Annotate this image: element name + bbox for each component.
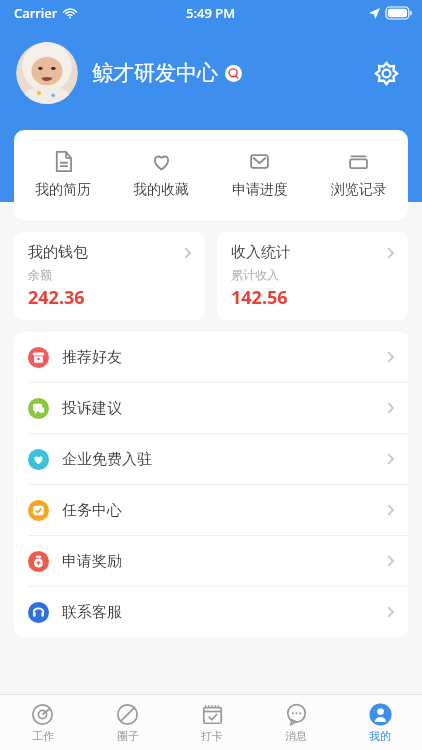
- staticText: 申请奖励: [62, 552, 122, 571]
- staticText: 联系客服: [62, 603, 122, 622]
- button[interactable]: 我的简历: [14, 130, 112, 220]
- staticText: 投诉建议: [62, 399, 122, 418]
- staticText: 消息: [285, 729, 307, 743]
- staticText: 圈子: [117, 729, 139, 743]
- button[interactable]: Settings: [366, 53, 406, 93]
- button[interactable]: 消息: [254, 695, 338, 750]
- button[interactable]: 我的钱包: [14, 232, 205, 320]
- staticText: 鲸才研发中心: [92, 60, 218, 86]
- staticText: 242.36: [28, 285, 85, 309]
- button[interactable]: 投诉建议: [14, 383, 408, 433]
- button[interactable]: 工作: [0, 695, 85, 750]
- staticText: 我的: [369, 729, 391, 743]
- staticText: 余额: [28, 267, 52, 282]
- button[interactable]: 任务中心: [14, 485, 408, 535]
- staticText: 累计收入: [231, 267, 279, 282]
- button[interactable]: 企业免费入驻: [14, 434, 408, 484]
- button[interactable]: 申请进度: [210, 130, 309, 220]
- staticText: 收入统计: [231, 243, 291, 262]
- button[interactable]: 浏览记录: [309, 130, 408, 220]
- button[interactable]: 收入统计: [217, 232, 408, 320]
- staticText: 工作: [32, 729, 54, 743]
- staticText: 5:49 PM: [186, 4, 236, 22]
- button[interactable]: 我的收藏: [112, 130, 210, 220]
- staticText: 我的收藏: [133, 181, 189, 199]
- staticText: 142.56: [231, 285, 288, 309]
- staticText: Carrier: [14, 4, 58, 22]
- staticText: 我的钱包: [28, 243, 88, 262]
- button[interactable]: 打卡: [170, 695, 254, 750]
- staticText: 任务中心: [62, 501, 122, 520]
- button[interactable]: 联系客服: [14, 587, 408, 637]
- button[interactable]: 圈子: [85, 695, 170, 750]
- staticText: 浏览记录: [331, 181, 387, 199]
- button[interactable]: 申请奖励: [14, 536, 408, 586]
- staticText: 推荐好友: [62, 348, 122, 367]
- button[interactable]: Avatar: [16, 42, 78, 104]
- staticText: 打卡: [201, 729, 223, 743]
- button[interactable]: 推荐好友: [14, 332, 408, 382]
- staticText: 我的简历: [35, 181, 91, 199]
- staticText: 企业免费入驻: [62, 450, 152, 469]
- button[interactable]: 我的: [338, 695, 422, 750]
- staticText: 申请进度: [232, 181, 288, 199]
